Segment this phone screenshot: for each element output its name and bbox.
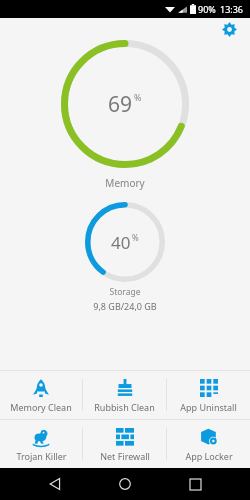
button[interactable]: App Uninstall — [167, 371, 250, 419]
button[interactable]: Rubbish Clean — [83, 371, 166, 419]
button[interactable]: 69 — [61, 40, 189, 168]
staticText: Storage — [109, 286, 141, 298]
staticText: Memory Clean — [10, 401, 72, 413]
button[interactable]: Settings — [218, 18, 240, 40]
button[interactable]: Trojan Killer — [0, 420, 82, 468]
button[interactable]: App Locker — [167, 420, 250, 468]
staticText: 40 — [111, 231, 131, 254]
button[interactable]: Net Firewall — [83, 420, 166, 468]
staticText: 90% — [198, 3, 216, 15]
button[interactable]: Back — [40, 469, 70, 499]
staticText: Memory — [105, 176, 145, 190]
staticText: % — [134, 91, 142, 103]
button[interactable]: Home — [110, 469, 140, 499]
staticText: % — [132, 232, 139, 243]
staticText: App Uninstall — [180, 401, 237, 413]
staticText: Net Firewall — [100, 450, 150, 462]
button[interactable]: Memory Clean — [0, 371, 82, 419]
staticText: App Locker — [185, 450, 233, 462]
button[interactable]: Recent apps — [180, 469, 210, 499]
staticText: Rubbish Clean — [94, 401, 155, 413]
staticText: 9,8 GB/24,0 GB — [93, 300, 157, 312]
button[interactable]: 40 — [85, 202, 165, 282]
staticText: Trojan Killer — [16, 450, 67, 462]
staticText: 69 — [108, 90, 133, 119]
staticText: 13:36 — [220, 3, 244, 15]
